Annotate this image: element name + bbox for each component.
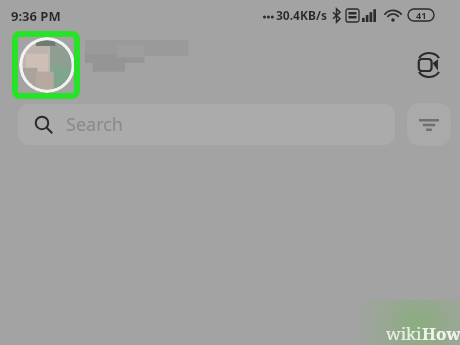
staticText: Search (66, 112, 123, 137)
staticText: 9:36 PM (11, 7, 61, 25)
button[interactable]: Search (18, 104, 395, 145)
staticText: 41 (416, 9, 427, 21)
button[interactable]: Profile (19, 37, 75, 93)
staticText: 30.4KB/s (276, 7, 327, 23)
button[interactable]: New chat camera (406, 42, 452, 88)
button[interactable]: Filter (407, 103, 451, 146)
staticText: wiki (386, 322, 422, 345)
staticText: How (422, 322, 460, 345)
